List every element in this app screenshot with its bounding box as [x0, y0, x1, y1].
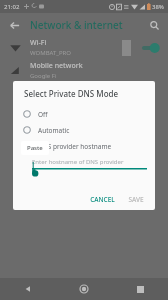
- staticText: Network & internet: [30, 18, 123, 32]
- button[interactable]: SAVE: [123, 192, 149, 207]
- staticText: Automatic: [38, 126, 70, 135]
- staticText: 38%: [152, 3, 164, 11]
- staticText: WOMBAT_PRO: [30, 49, 72, 57]
- button[interactable]: Home: [56, 278, 112, 300]
- staticText: Select Private DNS Mode: [24, 88, 119, 99]
- staticText: Mobile network: [30, 61, 83, 71]
- staticText: CANCEL: [90, 195, 115, 204]
- button[interactable]: Off: [13, 106, 155, 122]
- staticText: Enter hostname of DNS provider: [32, 158, 124, 166]
- button[interactable]: Automatic: [13, 122, 155, 138]
- button[interactable]: Mobile network: [0, 59, 168, 82]
- button[interactable]: Search: [145, 16, 163, 34]
- button[interactable]: Back: [0, 278, 56, 300]
- button[interactable]: DNS provider hostname: [13, 138, 155, 154]
- button[interactable]: Back: [4, 15, 24, 35]
- staticText: SAVE: [128, 195, 144, 204]
- staticText: Google Fi: [30, 72, 57, 80]
- staticText: Off: [38, 110, 48, 119]
- staticText: 21:02: [4, 3, 20, 11]
- button[interactable]: CANCEL: [85, 192, 120, 207]
- button[interactable]: Wi-Fi toggle: [138, 41, 160, 55]
- button[interactable]: Paste: [21, 141, 49, 155]
- staticText: DNS provider hostname: [38, 142, 112, 151]
- button[interactable]: Recent apps: [112, 278, 168, 300]
- staticText: Wi-Fi: [30, 38, 47, 48]
- staticText: Paste: [27, 144, 43, 152]
- button[interactable]: Wi-Fi: [0, 36, 168, 59]
